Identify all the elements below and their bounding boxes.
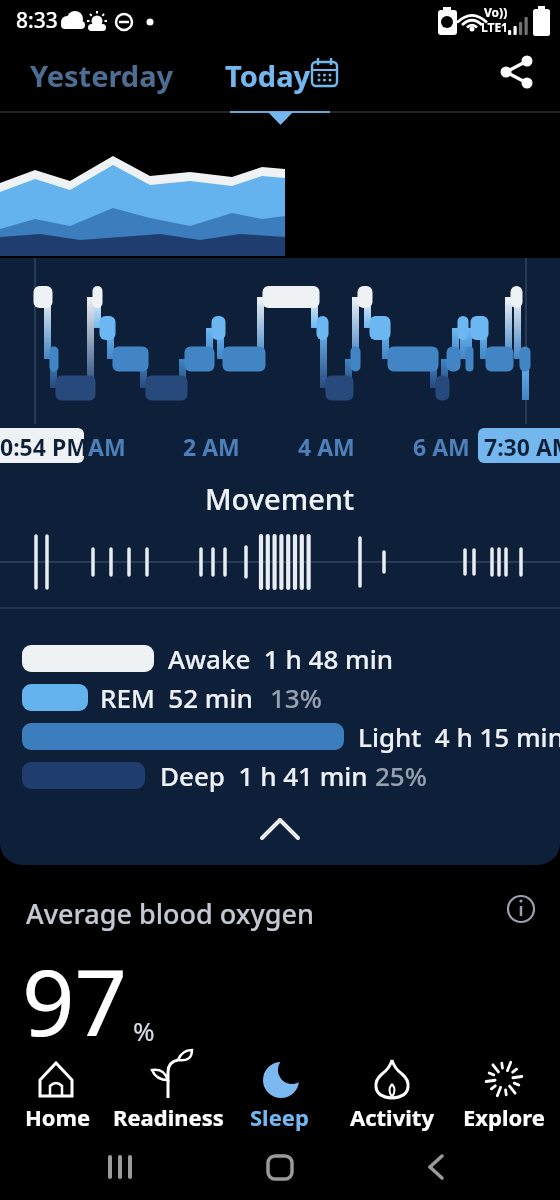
staticText: Explore — [463, 1102, 545, 1132]
staticText: 97 — [22, 938, 128, 1063]
staticText: 2 AM — [183, 431, 240, 462]
staticText: Readiness — [113, 1102, 224, 1132]
button[interactable] — [228, 1052, 332, 1134]
staticText: Yesterday — [30, 56, 174, 95]
staticText: 7:30 AM — [484, 431, 560, 462]
staticText: LTE1 — [481, 19, 508, 35]
button[interactable]: Yesterday — [18, 52, 162, 91]
button[interactable] — [340, 1052, 444, 1134]
staticText: Light 4 h 15 min — [358, 719, 560, 754]
staticText: 0:54 PM — [0, 431, 88, 462]
staticText: 25% — [375, 758, 427, 793]
staticText: Awake 1 h 48 min — [168, 641, 394, 676]
staticText: Today — [225, 56, 311, 95]
staticText: % — [133, 1013, 155, 1048]
staticText: 4 AM — [298, 431, 355, 462]
staticText: Sleep — [250, 1102, 309, 1132]
staticText: Average blood oxygen — [26, 895, 314, 932]
button[interactable] — [503, 891, 539, 927]
button[interactable] — [250, 808, 310, 852]
staticText: 13% — [270, 680, 322, 715]
staticText: Home — [25, 1102, 91, 1132]
staticText: Deep 1 h 41 min — [160, 758, 368, 793]
button[interactable] — [4, 1052, 108, 1134]
staticText: REM 52 min — [100, 680, 253, 715]
staticText: 6 AM — [413, 431, 470, 462]
button[interactable] — [452, 1052, 556, 1134]
staticText: 8:33 — [16, 6, 58, 35]
button[interactable] — [116, 1052, 220, 1134]
staticText: Activity — [350, 1102, 434, 1132]
staticText: Vo)) — [484, 4, 508, 20]
button[interactable] — [490, 50, 538, 98]
staticText: Movement — [205, 479, 355, 518]
button[interactable]: Today — [215, 52, 301, 91]
staticText: AM — [88, 431, 126, 462]
